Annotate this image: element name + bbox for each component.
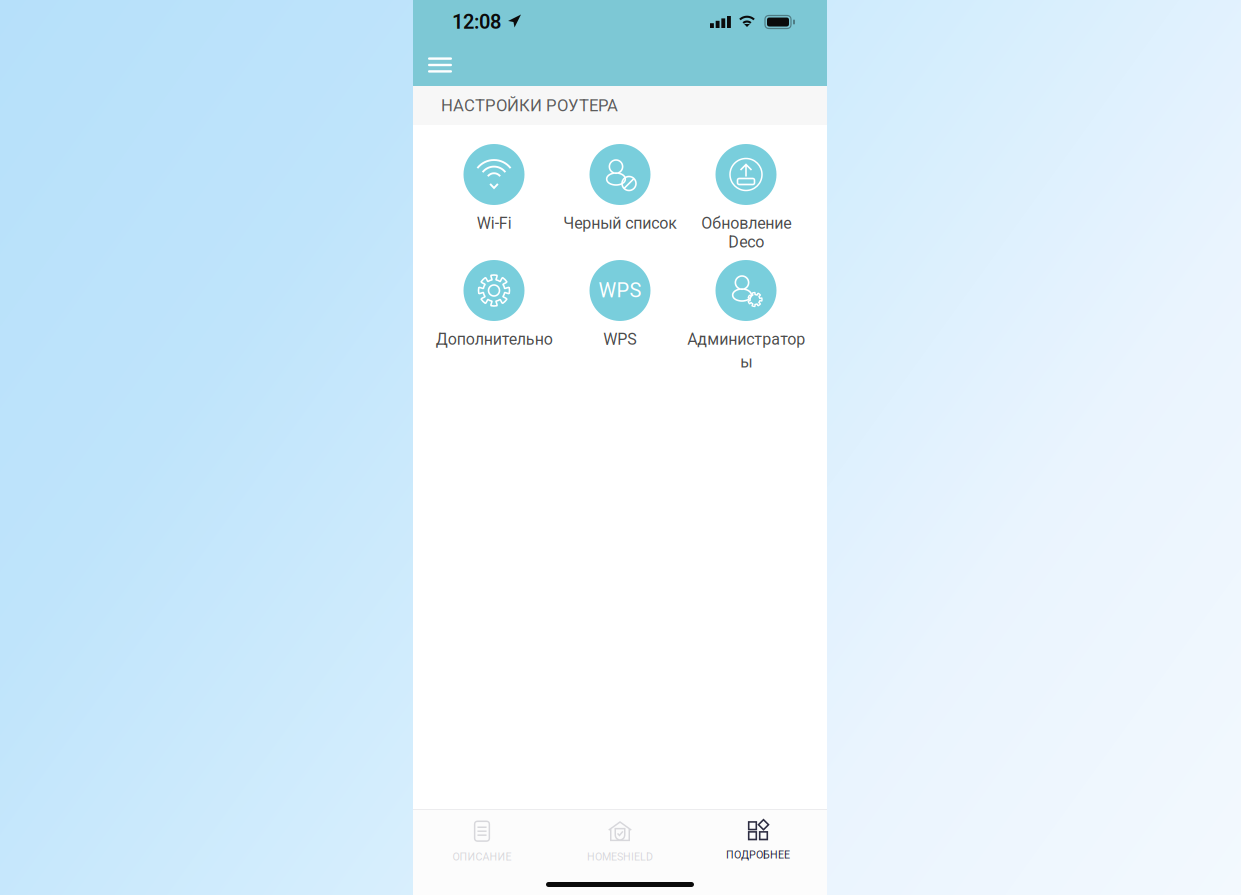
button[interactable]: Администратор <box>683 260 809 374</box>
staticText: Wi-Fi <box>476 214 511 233</box>
button[interactable]: Черный список <box>557 144 683 258</box>
staticText: Дополнительно <box>435 330 552 349</box>
staticText: WPS <box>598 279 641 302</box>
button[interactable]: Обновление Deco <box>683 144 809 258</box>
button[interactable]: Дополнительно <box>431 260 557 374</box>
staticText: ПОДРОБНЕЕ <box>726 849 790 861</box>
button[interactable]: Wi-Fi <box>431 144 557 258</box>
staticText: ы <box>740 353 752 372</box>
staticText: HOMESHIELD <box>587 851 653 863</box>
button[interactable]: Menu <box>416 44 464 86</box>
staticText: 12:08 <box>452 10 501 34</box>
button[interactable]: HOMESHIELD <box>551 810 689 872</box>
staticText: ОПИСАНИЕ <box>452 851 511 863</box>
staticText: Обновление Deco <box>701 214 791 251</box>
staticText: WPS <box>603 330 637 349</box>
staticText: НАСТРОЙКИ РОУТЕРА <box>441 96 618 115</box>
button[interactable]: WPS <box>557 260 683 374</box>
staticText: Администратор <box>687 330 805 349</box>
button[interactable]: ПОДРОБНЕЕ <box>689 810 827 872</box>
button[interactable]: ОПИСАНИЕ <box>413 810 551 872</box>
staticText: Черный список <box>563 214 677 233</box>
